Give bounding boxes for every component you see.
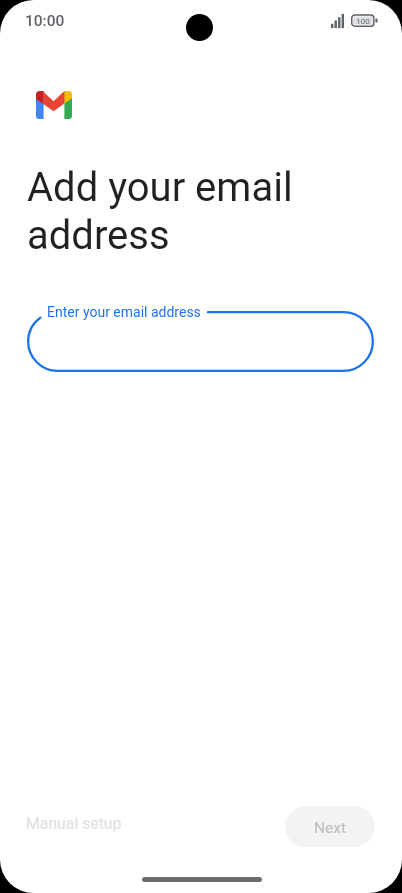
button[interactable]: Manual setup [11, 805, 137, 842]
staticText: 100 [351, 17, 375, 26]
staticText: Add your email address [27, 164, 293, 258]
staticText: Enter your email address [47, 304, 201, 320]
staticText: 10:00 [25, 12, 65, 30]
staticText: Next [314, 819, 347, 837]
staticText: Manual setup [26, 814, 122, 833]
button[interactable]: Next [285, 806, 375, 847]
button[interactable]: Enter your email address [27, 311, 374, 372]
